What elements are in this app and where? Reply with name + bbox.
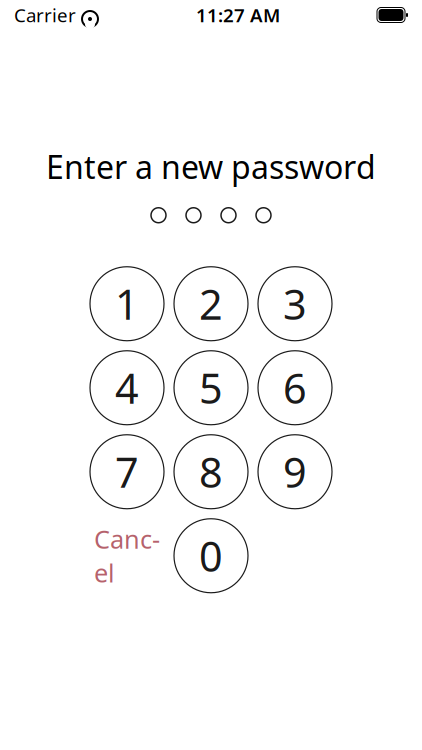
staticText: Carrier: [14, 3, 76, 27]
staticText: 4: [115, 360, 139, 415]
staticText: 7: [115, 444, 139, 499]
staticText: 0: [199, 528, 223, 583]
staticText: Enter a new password: [46, 145, 376, 188]
button[interactable]: 7: [90, 435, 164, 509]
button[interactable]: 2: [174, 267, 248, 341]
staticText: 1: [115, 276, 139, 331]
button[interactable]: 5: [174, 351, 248, 425]
button[interactable]: 1: [90, 267, 164, 341]
staticText: 2: [199, 276, 223, 331]
button[interactable]: 6: [258, 351, 332, 425]
staticText: Cancel: [94, 522, 160, 589]
staticText: 6: [283, 360, 307, 415]
staticText: 8: [199, 444, 223, 499]
button[interactable]: 8: [174, 435, 248, 509]
staticText: 11:27 AM: [196, 3, 280, 27]
button[interactable]: 9: [258, 435, 332, 509]
staticText: 3: [283, 276, 307, 331]
staticText: 9: [283, 444, 307, 499]
button[interactable]: 0: [174, 519, 248, 593]
button[interactable]: 4: [90, 351, 164, 425]
button[interactable]: 3: [258, 267, 332, 341]
button[interactable]: Cancel: [90, 519, 164, 593]
staticText: 5: [199, 360, 223, 415]
